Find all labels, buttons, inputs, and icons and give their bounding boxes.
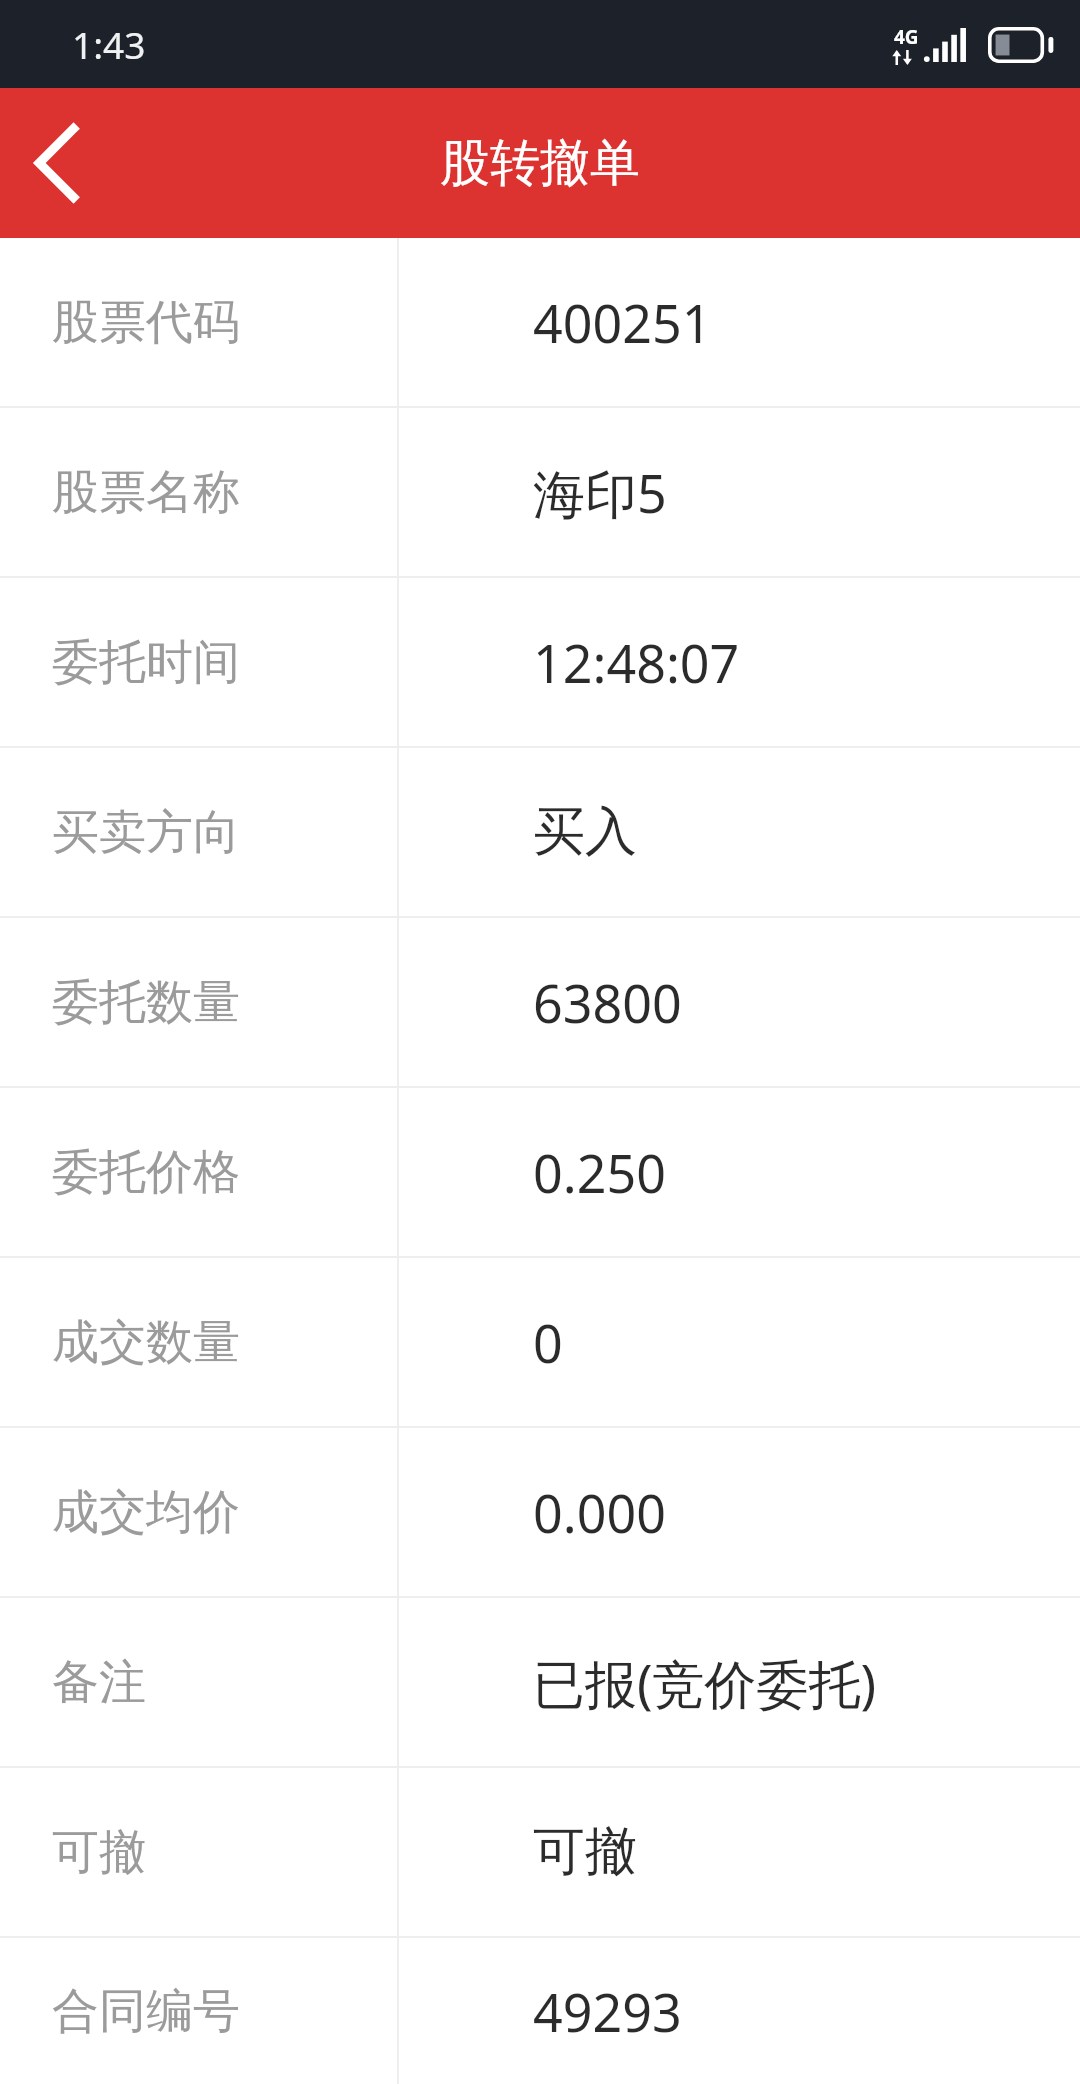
staticText: 买入 <box>533 799 637 865</box>
staticText: 备注 <box>52 1653 146 1712</box>
staticText: 合同编号 <box>52 1982 240 2041</box>
staticText: 0.250 <box>533 1137 666 1208</box>
staticText: 63800 <box>533 967 682 1038</box>
staticText: 已报(竞价委托) <box>533 1647 877 1718</box>
staticText: 海印5 <box>533 457 667 528</box>
staticText: 12:48:07 <box>533 627 740 698</box>
staticText: 委托数量 <box>52 973 240 1032</box>
staticText: 委托时间 <box>52 633 240 692</box>
button[interactable]: 股票代码 <box>0 238 1080 406</box>
staticText: 4G <box>894 24 919 50</box>
staticText: 1:43 <box>72 19 146 69</box>
staticText: 股票名称 <box>52 463 240 522</box>
staticText: 委托价格 <box>52 1143 240 1202</box>
staticText: 可撤 <box>533 1819 637 1885</box>
button[interactable]: 买卖方向 <box>0 748 1080 916</box>
staticText: 可撤 <box>52 1823 146 1882</box>
button[interactable]: 委托数量 <box>0 918 1080 1086</box>
staticText: 0 <box>533 1307 563 1378</box>
button[interactable]: 委托时间 <box>0 578 1080 746</box>
button[interactable]: 成交数量 <box>0 1258 1080 1426</box>
staticText: 买卖方向 <box>52 803 240 862</box>
staticText: 股转撤单 <box>440 132 640 195</box>
staticText: 成交均价 <box>52 1483 240 1542</box>
button[interactable]: 可撤 <box>0 1768 1080 1936</box>
button[interactable]: 委托价格 <box>0 1088 1080 1256</box>
staticText: 成交数量 <box>52 1313 240 1372</box>
staticText: 0.000 <box>533 1477 666 1548</box>
button[interactable]: 股票名称 <box>0 408 1080 576</box>
button[interactable]: Back <box>0 88 118 238</box>
button[interactable]: 合同编号 <box>0 1938 1080 2084</box>
button[interactable]: 备注 <box>0 1598 1080 1766</box>
staticText: 49293 <box>533 1976 682 2047</box>
staticText: 股票代码 <box>52 293 240 352</box>
button[interactable]: 成交均价 <box>0 1428 1080 1596</box>
staticText: 400251 <box>533 287 712 358</box>
